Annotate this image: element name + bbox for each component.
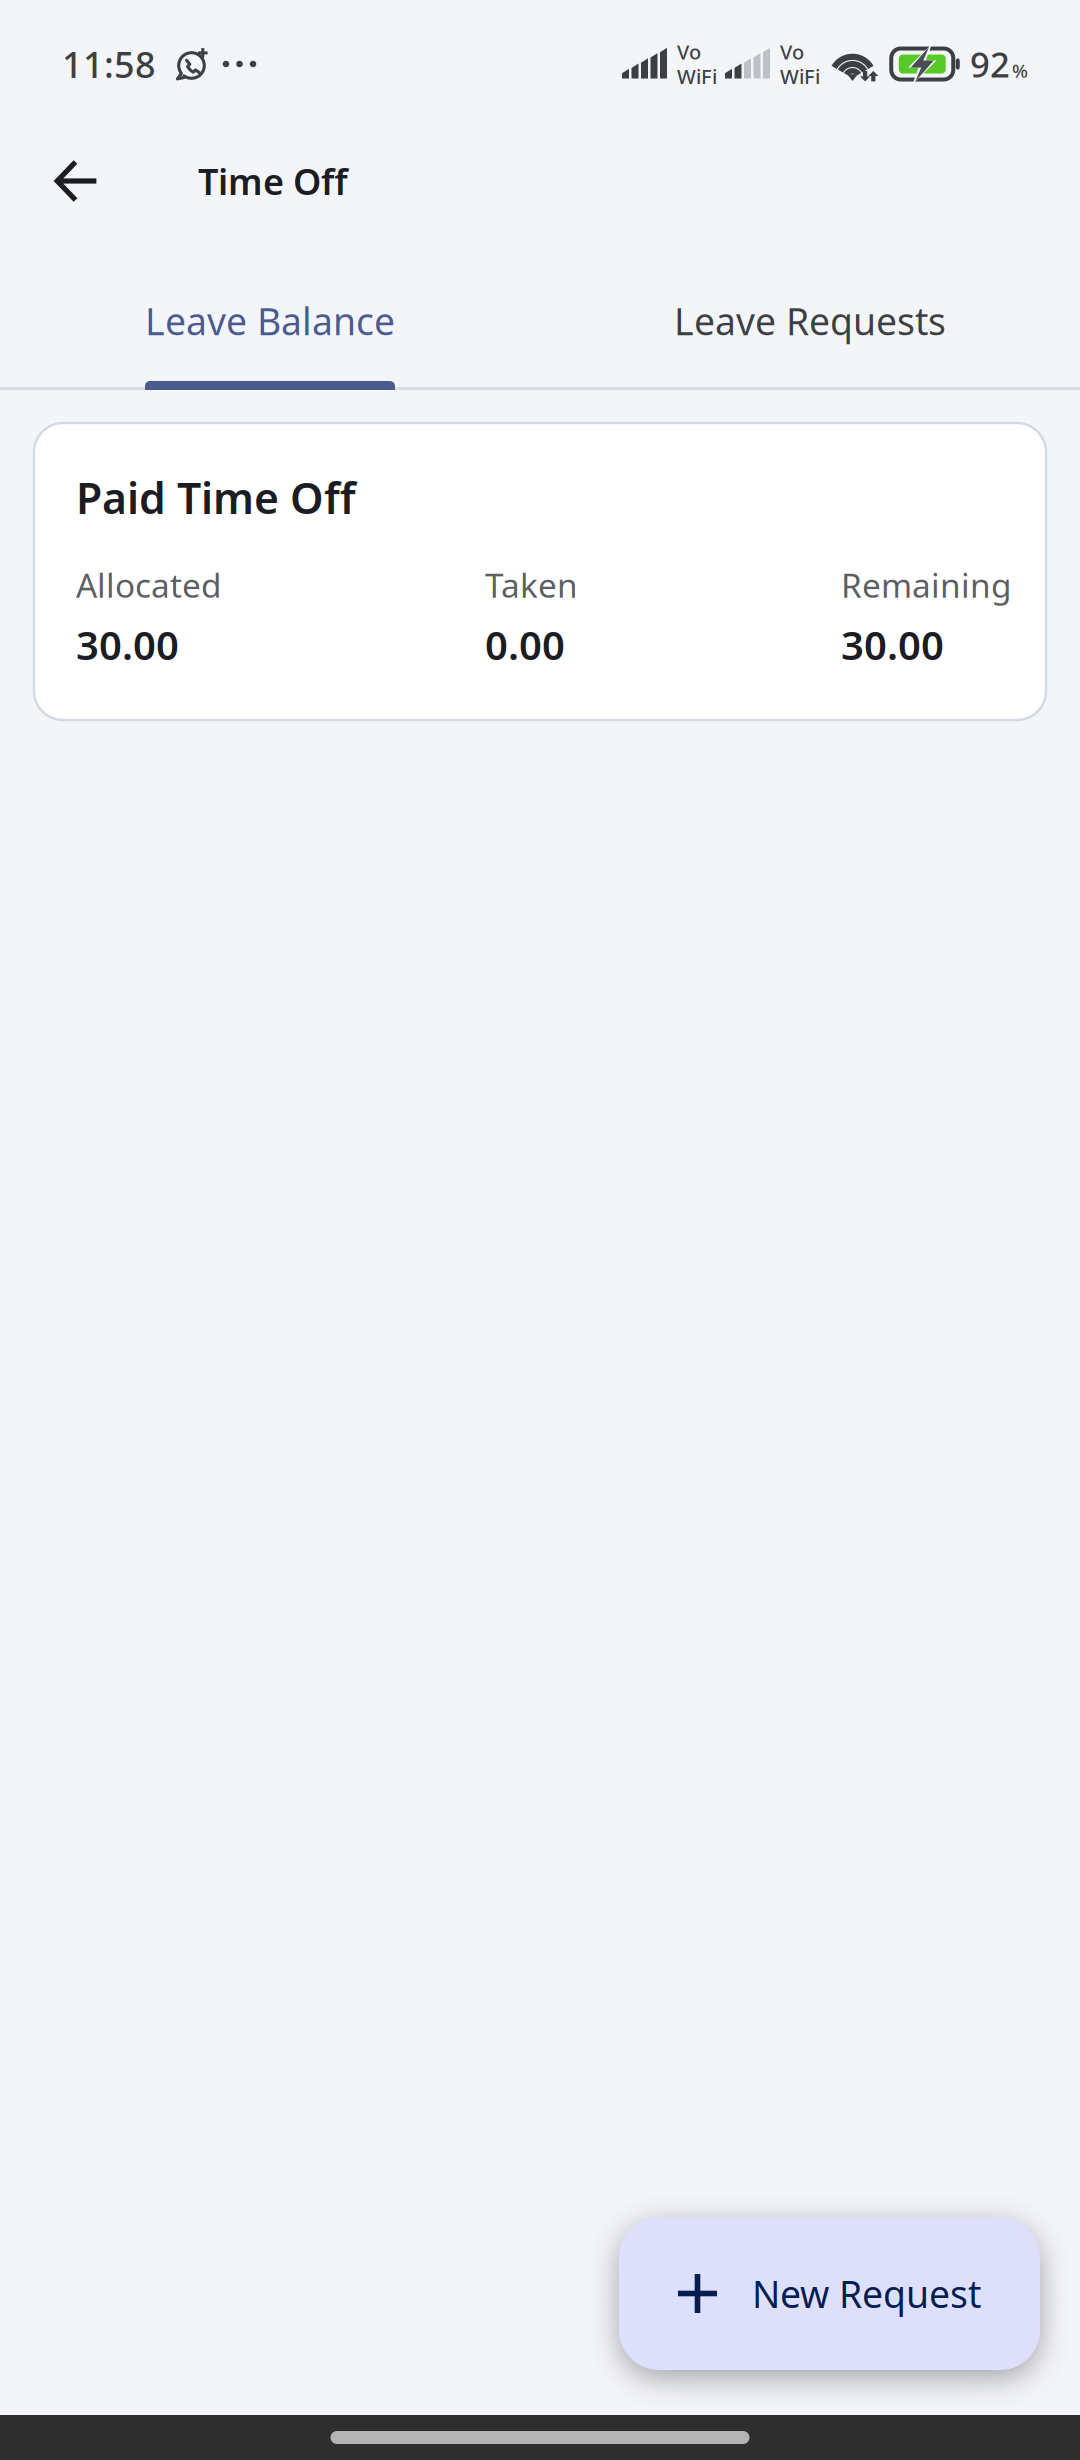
staticText: Leave Requests bbox=[674, 296, 946, 346]
staticText: Taken bbox=[485, 563, 578, 607]
staticText: Remaining bbox=[841, 563, 1012, 607]
staticText: % bbox=[1012, 58, 1028, 83]
staticText: 30.00 bbox=[76, 618, 179, 671]
staticText: New Request bbox=[752, 2269, 981, 2318]
staticText: Allocated bbox=[76, 563, 222, 607]
staticText: Vo bbox=[780, 38, 804, 65]
staticText: Paid Time Off bbox=[76, 469, 356, 526]
button[interactable]: Leave Balance bbox=[0, 234, 540, 390]
button[interactable]: Leave Requests bbox=[540, 234, 1080, 390]
staticText: 0.00 bbox=[485, 618, 565, 671]
staticText: Time Off bbox=[198, 157, 348, 205]
button[interactable]: Back bbox=[24, 128, 130, 234]
button[interactable]: New Request bbox=[619, 2217, 1040, 2370]
staticText: Vo bbox=[677, 38, 701, 65]
staticText: Leave Balance bbox=[145, 296, 395, 346]
staticText: WiFi bbox=[780, 63, 820, 90]
staticText: WiFi bbox=[677, 63, 717, 90]
staticText: 30.00 bbox=[841, 618, 944, 671]
staticText: 11:58 bbox=[62, 40, 156, 88]
staticText: 92 bbox=[970, 41, 1010, 87]
